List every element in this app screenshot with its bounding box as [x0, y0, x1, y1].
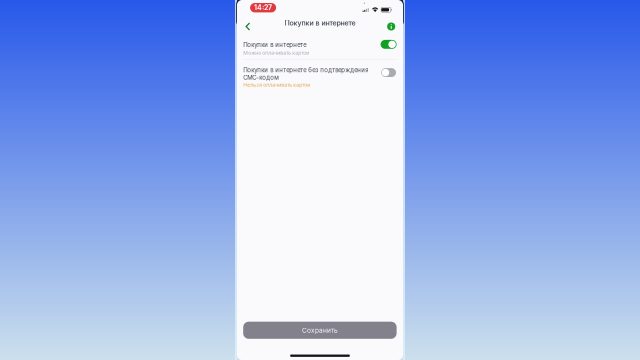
- button[interactable]: Покупки в интернете: [243, 42, 397, 62]
- staticText: 14:27: [254, 3, 272, 12]
- button[interactable]: Назад: [241, 20, 254, 33]
- staticText: Покупки в интернете: [284, 19, 355, 27]
- button[interactable]: Сохранить: [243, 322, 397, 339]
- staticText: Покупки в интернете: [243, 41, 306, 48]
- staticText: Покупки в интернете без подтверждения: [243, 66, 368, 74]
- button[interactable]: Информация: [385, 20, 398, 33]
- button[interactable]: Покупки в интернете без подтверждения: [243, 67, 397, 91]
- staticText: Сохранить: [302, 326, 338, 334]
- staticText: Можно оплачивать картой: [243, 50, 309, 56]
- staticText: Нельзя оплачивать картой: [243, 82, 310, 88]
- staticText: СМС-кодом: [243, 74, 279, 81]
